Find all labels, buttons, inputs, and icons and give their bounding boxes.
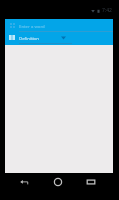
button[interactable]: Home	[48, 173, 68, 190]
button[interactable]: Enter a word	[5, 20, 113, 31]
button[interactable]: Back	[14, 173, 34, 190]
button[interactable]: Recent apps	[81, 173, 101, 190]
staticText: 7:42	[102, 7, 112, 14]
other: Expand dropdown	[55, 32, 71, 43]
staticText: Definition	[19, 35, 39, 41]
staticText: Enter a word	[19, 23, 45, 29]
button[interactable]: Definition	[5, 32, 113, 43]
